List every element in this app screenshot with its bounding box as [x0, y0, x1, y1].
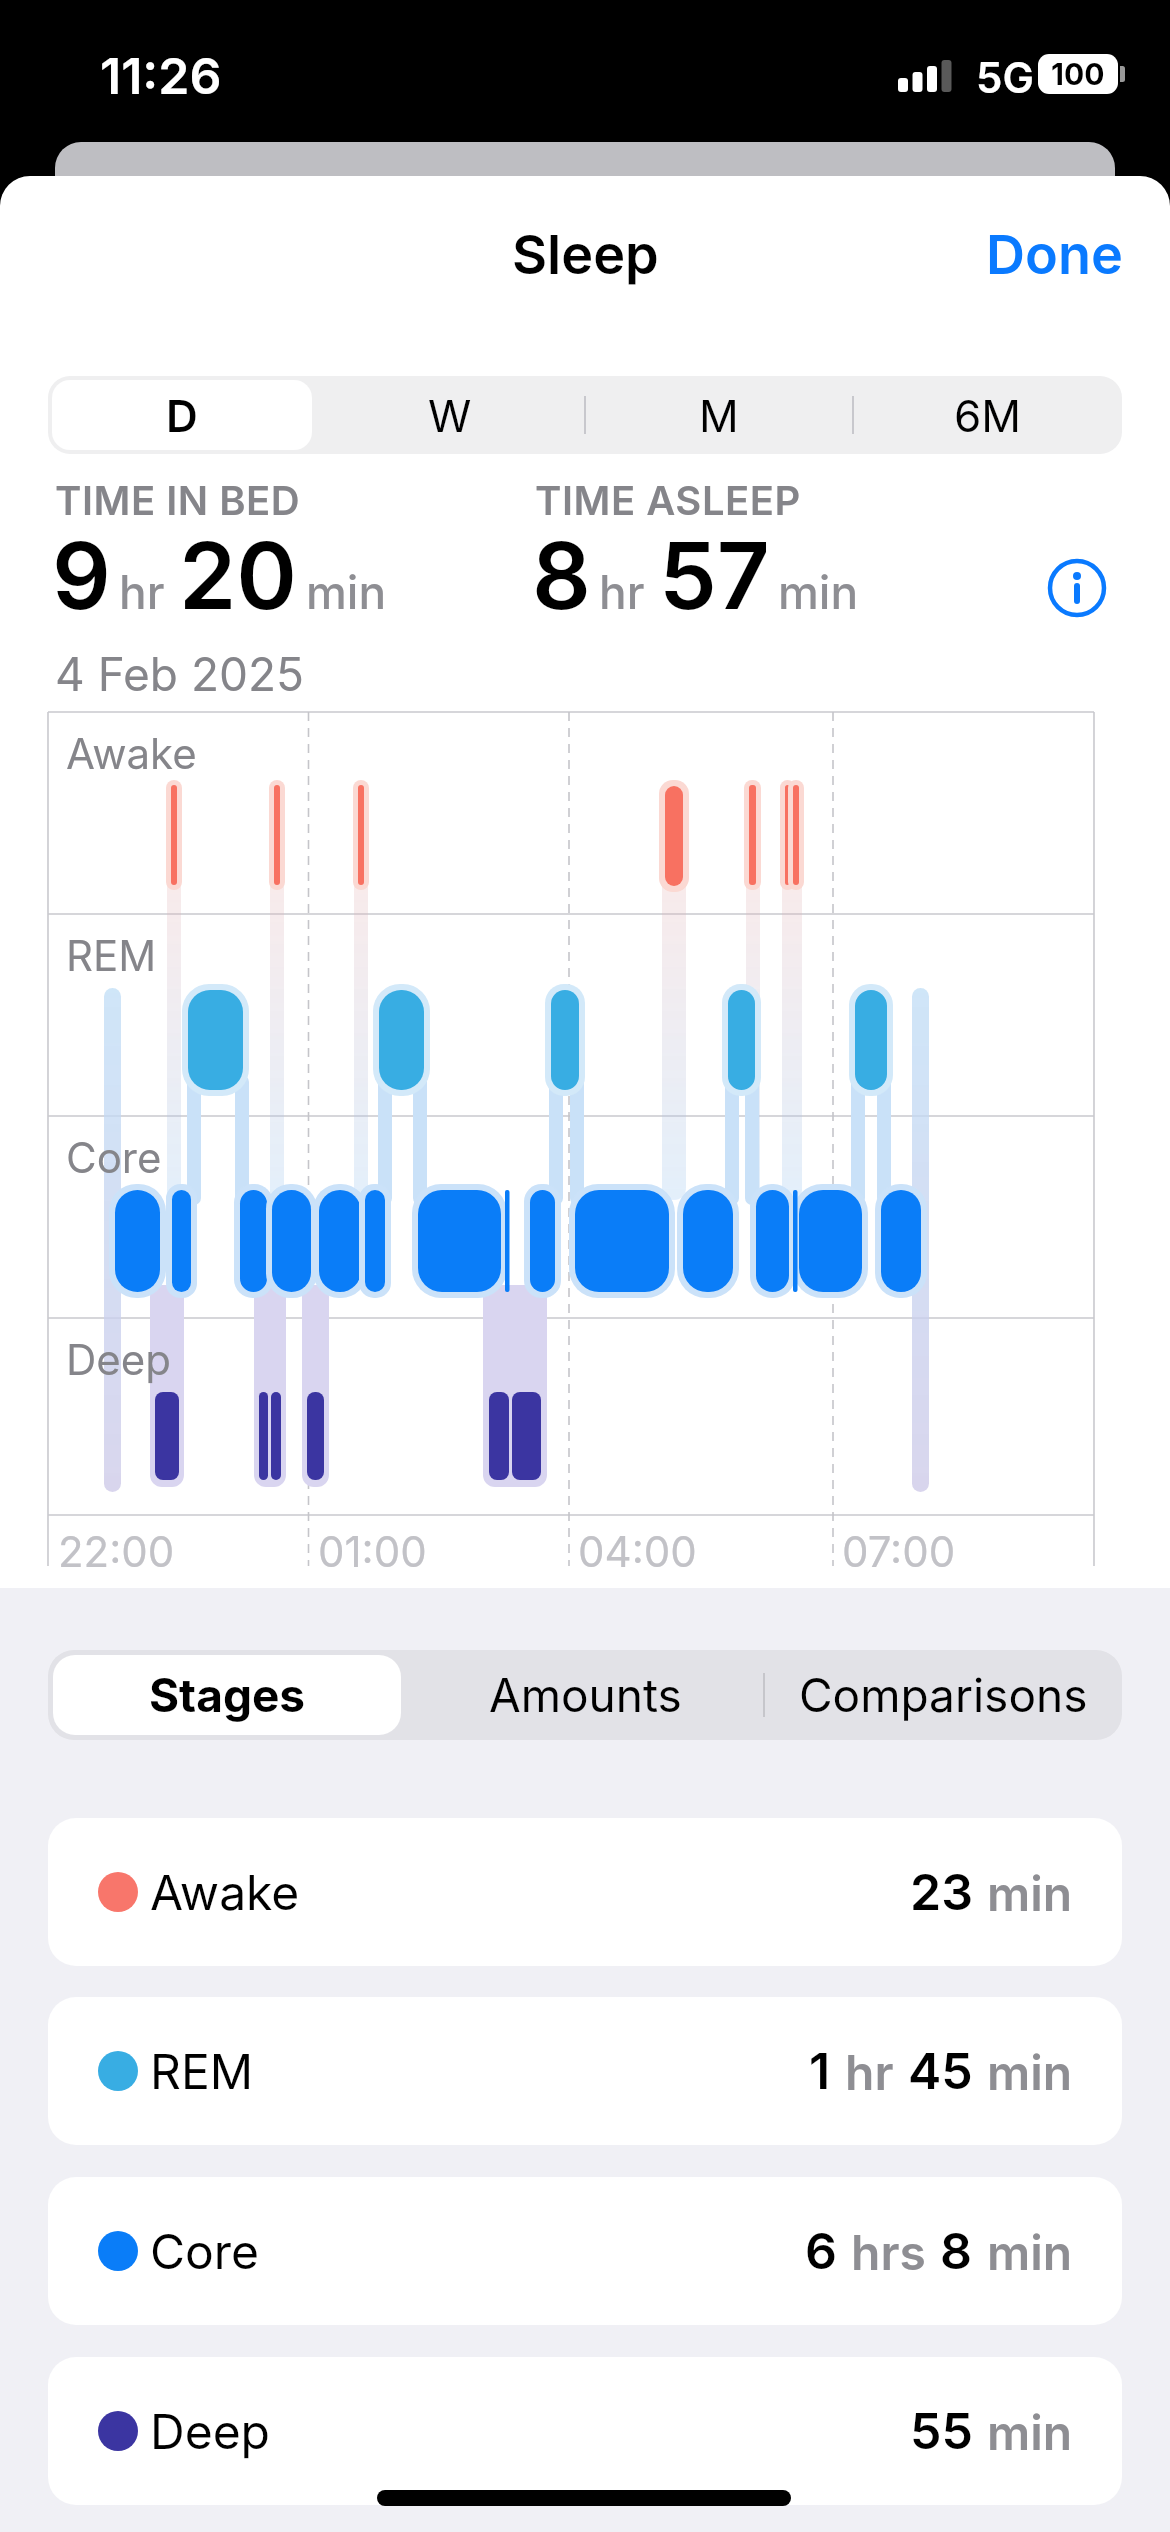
staticText: hr — [599, 564, 645, 620]
button[interactable]: M — [584, 376, 853, 454]
staticText: min — [778, 564, 859, 620]
staticText: 6 — [805, 2221, 837, 2281]
staticText: Comparisons — [799, 1667, 1088, 1723]
staticText: TIME ASLEEP — [535, 476, 801, 524]
staticText: Amounts — [489, 1667, 682, 1723]
staticText: Deep — [66, 1334, 171, 1385]
staticText: Deep — [150, 2402, 270, 2460]
staticText: min — [987, 2223, 1073, 2281]
button[interactable] — [1045, 556, 1109, 620]
button[interactable]: REM — [48, 1997, 1122, 2145]
staticText: 23 — [910, 1862, 973, 1922]
staticText: hr — [119, 564, 165, 620]
staticText: 100 — [1051, 56, 1105, 92]
staticText: 20 — [179, 520, 298, 631]
staticText: min — [306, 564, 387, 620]
staticText: 45 — [908, 2041, 973, 2101]
staticText: Done — [986, 222, 1123, 287]
staticText: min — [987, 2043, 1073, 2101]
button[interactable] — [52, 380, 312, 450]
staticText: D — [166, 389, 198, 442]
staticText: min — [987, 1864, 1073, 1922]
button[interactable]: Core — [48, 2177, 1122, 2325]
button[interactable]: Done — [986, 222, 1123, 287]
staticText: 11:26 — [100, 46, 222, 106]
staticText: 1 — [809, 2041, 831, 2101]
staticText: 8 — [532, 520, 591, 631]
staticText: W — [428, 389, 472, 442]
button[interactable]: D — [48, 376, 316, 454]
button[interactable] — [53, 1655, 401, 1735]
staticText: 07:00 — [842, 1526, 956, 1577]
staticText: M — [699, 389, 739, 442]
staticText: TIME IN BED — [55, 476, 301, 524]
staticText: 01:00 — [318, 1526, 427, 1577]
staticText: 9 — [52, 520, 111, 631]
staticText: hrs — [851, 2223, 926, 2281]
staticText: REM — [66, 930, 157, 981]
staticText: 6M — [954, 389, 1022, 442]
staticText: 22:00 — [58, 1526, 175, 1577]
staticText: hr — [845, 2043, 894, 2101]
button[interactable]: Awake — [48, 1818, 1122, 1966]
staticText: 4 Feb 2025 — [55, 646, 305, 702]
staticText: Awake — [150, 1863, 300, 1921]
staticText: Sleep — [512, 222, 659, 287]
staticText: min — [987, 2403, 1073, 2461]
button[interactable]: Comparisons — [764, 1650, 1122, 1740]
staticText: 55 — [910, 2401, 973, 2461]
staticText: Stages — [149, 1667, 306, 1723]
staticText: 04:00 — [578, 1526, 697, 1577]
button[interactable]: 6M — [853, 376, 1122, 454]
staticText: REM — [150, 2042, 254, 2100]
staticText: 57 — [659, 520, 770, 631]
staticText: Core — [66, 1132, 162, 1183]
button[interactable]: W — [316, 376, 584, 454]
button[interactable]: Amounts — [406, 1650, 764, 1740]
button[interactable]: Stages — [48, 1650, 406, 1740]
staticText: 8 — [940, 2221, 973, 2281]
staticText: 5G — [976, 52, 1034, 103]
staticText: Core — [150, 2222, 260, 2280]
staticText: Awake — [66, 728, 197, 779]
button[interactable]: Deep — [48, 2357, 1122, 2505]
